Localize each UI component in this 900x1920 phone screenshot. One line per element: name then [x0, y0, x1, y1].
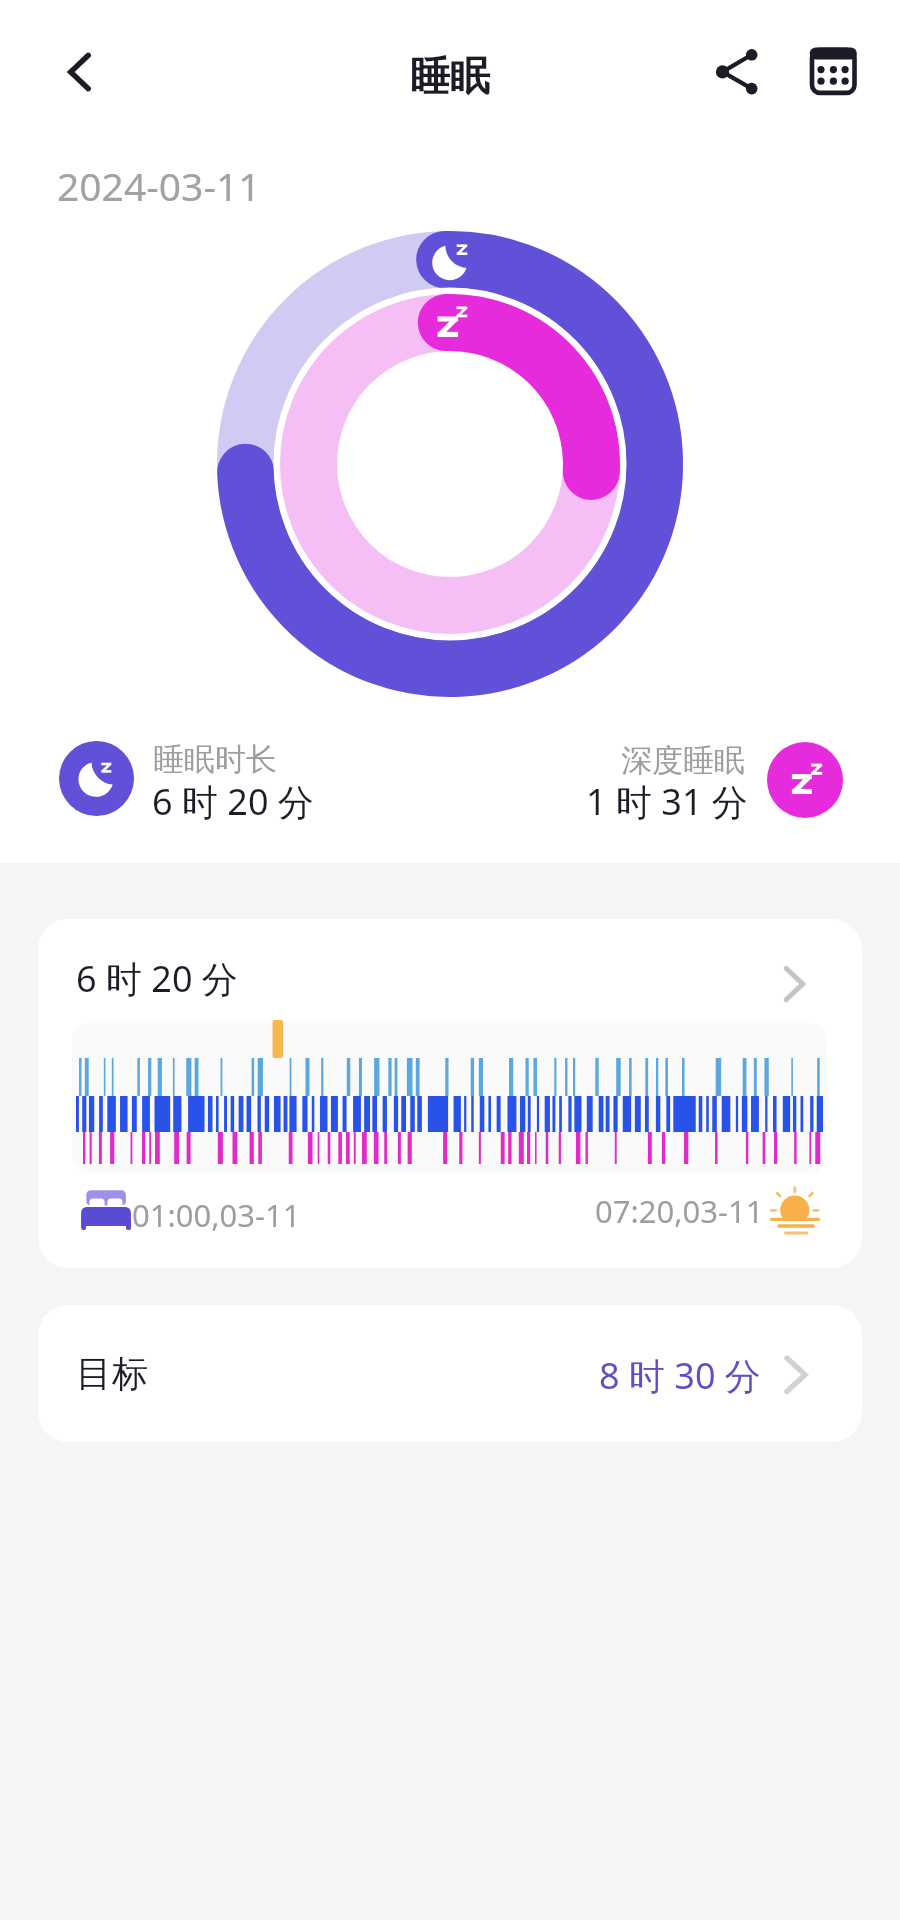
button[interactable]: 6 时 20 分 [38, 919, 862, 1268]
button[interactable]: Calendar [800, 36, 864, 100]
button[interactable]: 目标 [38, 1305, 862, 1442]
staticText: 深度睡眠 [621, 741, 745, 780]
staticText: 6 时 20 分 [152, 777, 314, 826]
staticText: 目标 [76, 1351, 148, 1396]
button[interactable]: Share [705, 36, 769, 100]
staticText: 07:20,03-11 [595, 1190, 764, 1232]
staticText: 01:00,03-11 [132, 1194, 301, 1236]
staticText: 1 时 31 分 [586, 777, 748, 826]
button[interactable]: Back [44, 40, 108, 104]
staticText: 睡眠 [0, 51, 900, 101]
staticText: 6 时 20 分 [76, 954, 238, 1003]
staticText: 睡眠时长 [153, 740, 277, 779]
staticText: 8 时 30 分 [599, 1351, 761, 1400]
staticText: 2024-03-11 [57, 159, 261, 212]
